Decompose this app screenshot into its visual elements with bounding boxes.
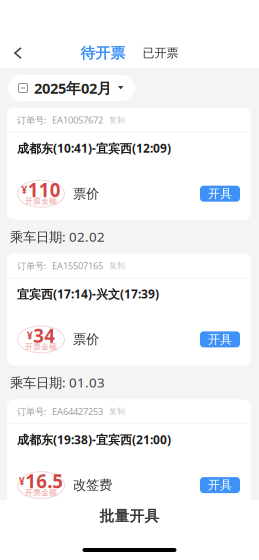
button[interactable]: 复制 — [108, 115, 126, 125]
staticText: ¥ — [21, 183, 27, 197]
staticText: 成都东(10:41)-宜宾西(12:09) — [17, 140, 171, 156]
staticText: 110 — [28, 177, 61, 202]
staticText: 开具 — [208, 186, 232, 201]
button[interactable]: 2025年02月 — [8, 75, 135, 101]
button[interactable]: Back — [0, 38, 36, 68]
staticText: 订单号: — [17, 114, 47, 126]
staticText: 乘车日期: 02.02 — [10, 228, 105, 245]
staticText: 订单号: — [17, 405, 47, 418]
staticText: 开具 — [208, 332, 232, 347]
button[interactable]: 复制 — [108, 261, 126, 271]
staticText: 开票金额 — [25, 196, 57, 206]
staticText: 待开票 — [80, 44, 125, 62]
button[interactable]: 批量开具 — [0, 500, 259, 532]
staticText: 批量开具 — [99, 507, 159, 525]
staticText: 34 — [33, 323, 55, 348]
staticText: 已开票 — [142, 46, 178, 60]
staticText: 开具 — [208, 478, 232, 492]
staticText: 开票金额 — [25, 488, 57, 497]
button[interactable]: 开具 — [200, 331, 240, 347]
staticText: EA15507165 — [52, 259, 103, 272]
staticText: 2025年02月 — [34, 78, 112, 98]
button[interactable]: 待开票 — [80, 44, 125, 62]
staticText: 复制 — [109, 406, 125, 416]
staticText: ¥ — [19, 474, 25, 488]
staticText: EA64427253 — [52, 405, 103, 418]
staticText: 票价 — [73, 331, 99, 348]
staticText: 订单号: — [17, 259, 47, 272]
staticText: 乘车日期: 01.03 — [10, 373, 105, 391]
staticText: 复制 — [109, 115, 125, 125]
staticText: 改签费 — [73, 477, 112, 493]
staticText: 复制 — [109, 261, 125, 271]
button[interactable]: 复制 — [108, 406, 126, 416]
button[interactable]: 开具 — [200, 186, 240, 202]
staticText: 开票金额 — [25, 342, 57, 352]
staticText: 宜宾西(17:14)-兴文(17:39) — [17, 286, 159, 302]
staticText: 票价 — [73, 185, 99, 202]
button[interactable]: 已开票 — [142, 46, 178, 60]
staticText: EA10057672 — [52, 114, 103, 126]
staticText: 成都东(19:38)-宜宾西(21:00) — [17, 432, 171, 447]
staticText: 16.5 — [25, 469, 63, 493]
button[interactable]: 开具 — [200, 477, 240, 493]
staticText: ¥ — [27, 328, 33, 342]
